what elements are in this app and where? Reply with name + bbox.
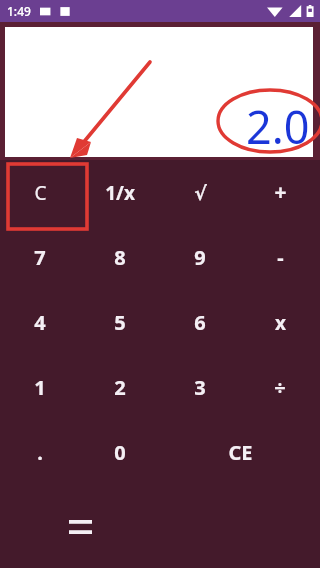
staticText: 0: [114, 439, 126, 466]
button[interactable]: 4: [0, 290, 80, 355]
staticText: 1:49: [7, 3, 31, 19]
button[interactable]: 2: [80, 355, 160, 420]
button[interactable]: +: [240, 160, 320, 225]
button[interactable]: ÷: [240, 355, 320, 420]
button[interactable]: √: [160, 160, 240, 225]
staticText: ÷: [274, 374, 286, 401]
staticText: 7: [34, 244, 46, 271]
staticText: 9: [194, 244, 206, 271]
staticText: 1: [34, 374, 46, 401]
button[interactable]: CE: [160, 420, 320, 485]
button[interactable]: 1: [0, 355, 80, 420]
button[interactable]: 6: [160, 290, 240, 355]
button[interactable]: x: [240, 290, 320, 355]
staticText: 5: [114, 309, 126, 336]
staticText: 3: [194, 374, 206, 401]
button[interactable]: 8: [80, 225, 160, 290]
button[interactable]: C: [0, 160, 80, 225]
button[interactable]: .: [0, 420, 80, 485]
button[interactable]: 1/x: [80, 160, 160, 225]
button[interactable]: 0: [80, 420, 160, 485]
staticText: .: [37, 439, 43, 466]
staticText: CE: [228, 439, 253, 466]
button[interactable]: 9: [160, 225, 240, 290]
staticText: 4: [34, 309, 46, 336]
button[interactable]: 3: [160, 355, 240, 420]
staticText: 1/x: [105, 180, 135, 206]
staticText: x: [275, 310, 286, 336]
button[interactable]: 5: [80, 290, 160, 355]
staticText: 2: [114, 374, 126, 401]
staticText: 2.0: [246, 96, 310, 157]
staticText: 6: [194, 309, 206, 336]
button[interactable]: -: [240, 225, 320, 290]
staticText: +: [274, 178, 287, 207]
staticText: √: [194, 182, 207, 204]
button[interactable]: Equals: [0, 485, 160, 568]
button[interactable]: 7: [0, 225, 80, 290]
staticText: -: [277, 244, 284, 271]
staticText: C: [34, 180, 47, 206]
staticText: 8: [114, 244, 126, 271]
